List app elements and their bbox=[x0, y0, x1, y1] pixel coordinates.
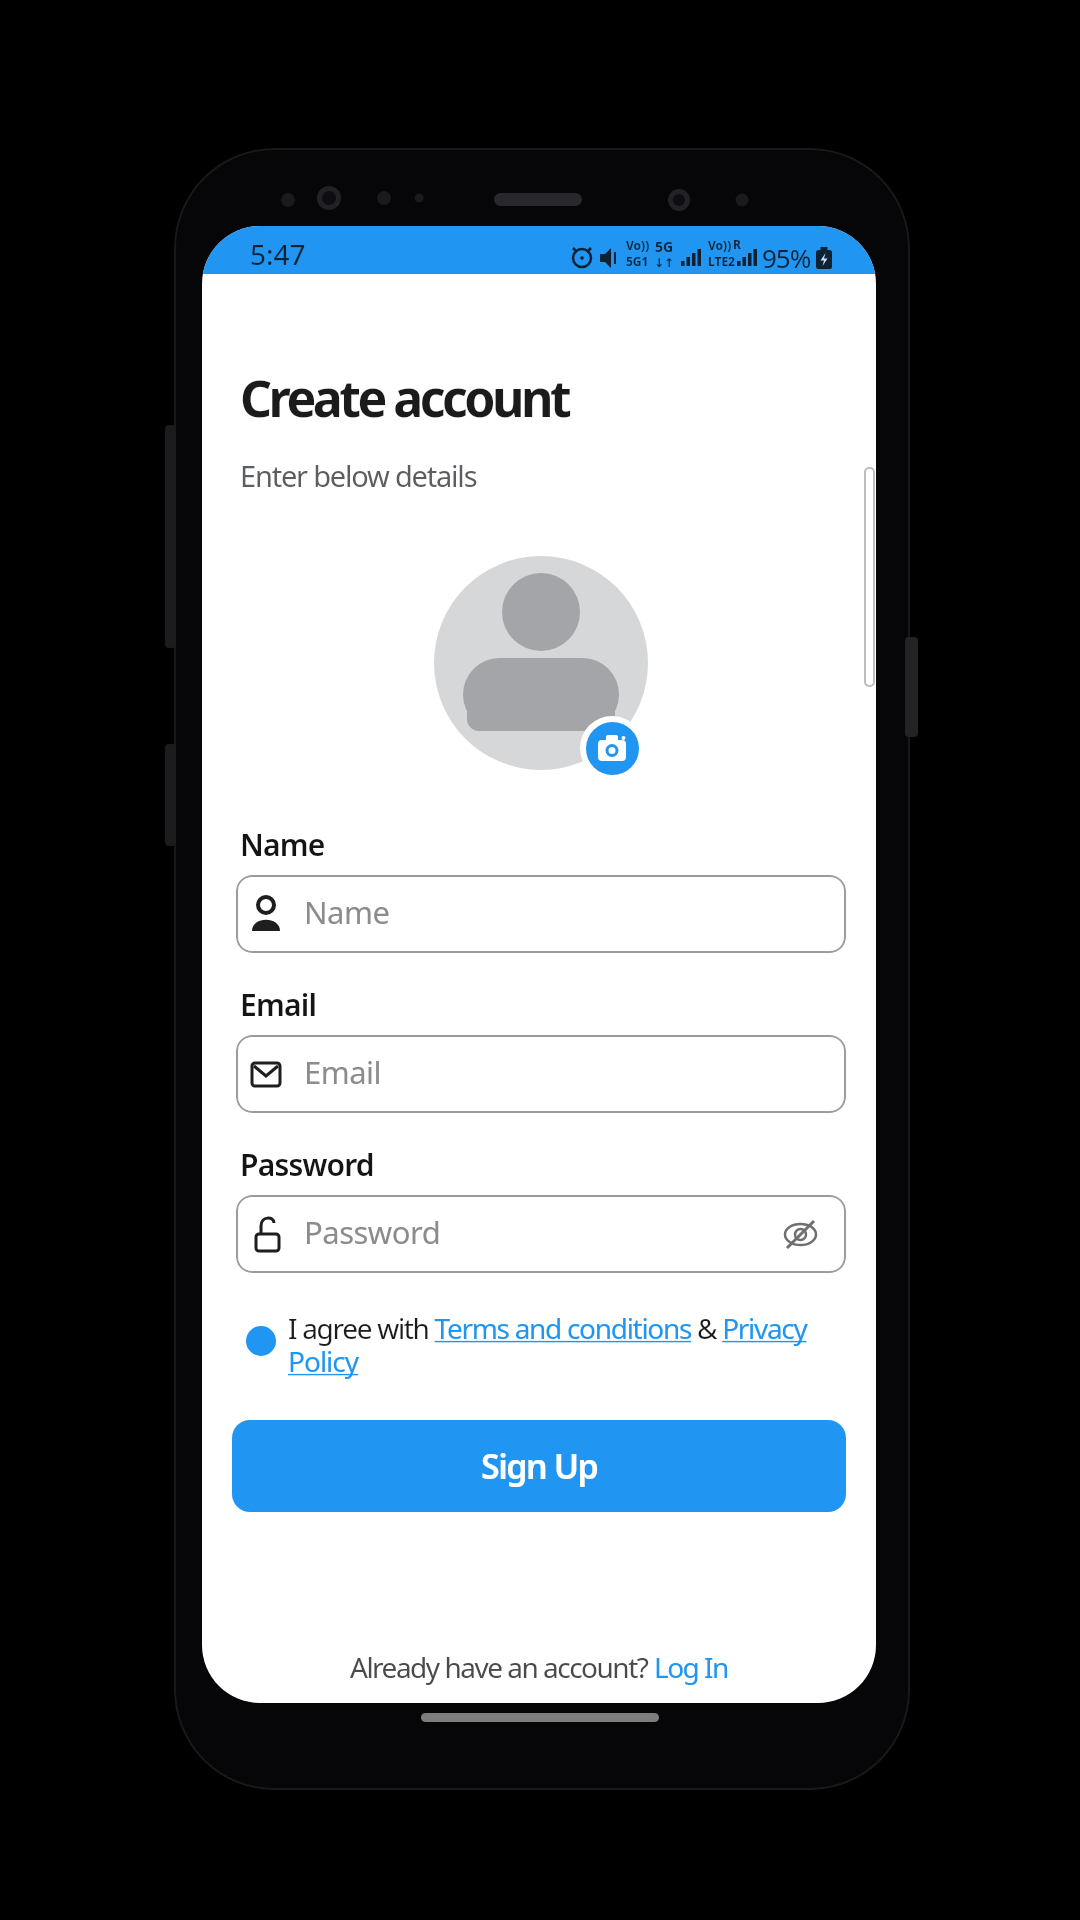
staticText: Already have an account? bbox=[350, 1648, 654, 1686]
staticText: Password bbox=[240, 1144, 374, 1185]
staticText: Vo)) bbox=[626, 237, 650, 253]
button[interactable]: Log In bbox=[654, 1648, 728, 1686]
button[interactable]: I agree with Terms and conditions & Priv… bbox=[288, 1309, 807, 1347]
staticText: LTE2 bbox=[708, 253, 735, 269]
staticText: Email bbox=[240, 984, 317, 1025]
staticText: Create account bbox=[240, 364, 569, 432]
button[interactable]: Name bbox=[236, 875, 846, 953]
staticText: Email bbox=[304, 1051, 382, 1093]
button[interactable]: Email bbox=[236, 1035, 846, 1113]
staticText: 5:47 bbox=[250, 235, 306, 273]
button[interactable] bbox=[586, 722, 639, 775]
staticText: 5G1 bbox=[626, 253, 649, 269]
staticText: Vo)) bbox=[708, 237, 732, 253]
staticText: 5G bbox=[655, 237, 674, 256]
staticText: Enter below details bbox=[240, 456, 477, 495]
staticText: Sign Up bbox=[481, 1443, 598, 1489]
button[interactable]: Sign Up bbox=[232, 1420, 846, 1512]
staticText: Name bbox=[304, 891, 390, 933]
button[interactable] bbox=[246, 1326, 276, 1356]
button[interactable]: Password bbox=[236, 1195, 846, 1273]
staticText: R bbox=[733, 236, 741, 252]
staticText: 95% bbox=[762, 240, 811, 275]
staticText: Password bbox=[304, 1211, 441, 1253]
staticText: Policy bbox=[288, 1342, 359, 1380]
staticText: ↓↑ bbox=[654, 256, 675, 270]
staticText: Name bbox=[240, 824, 325, 865]
